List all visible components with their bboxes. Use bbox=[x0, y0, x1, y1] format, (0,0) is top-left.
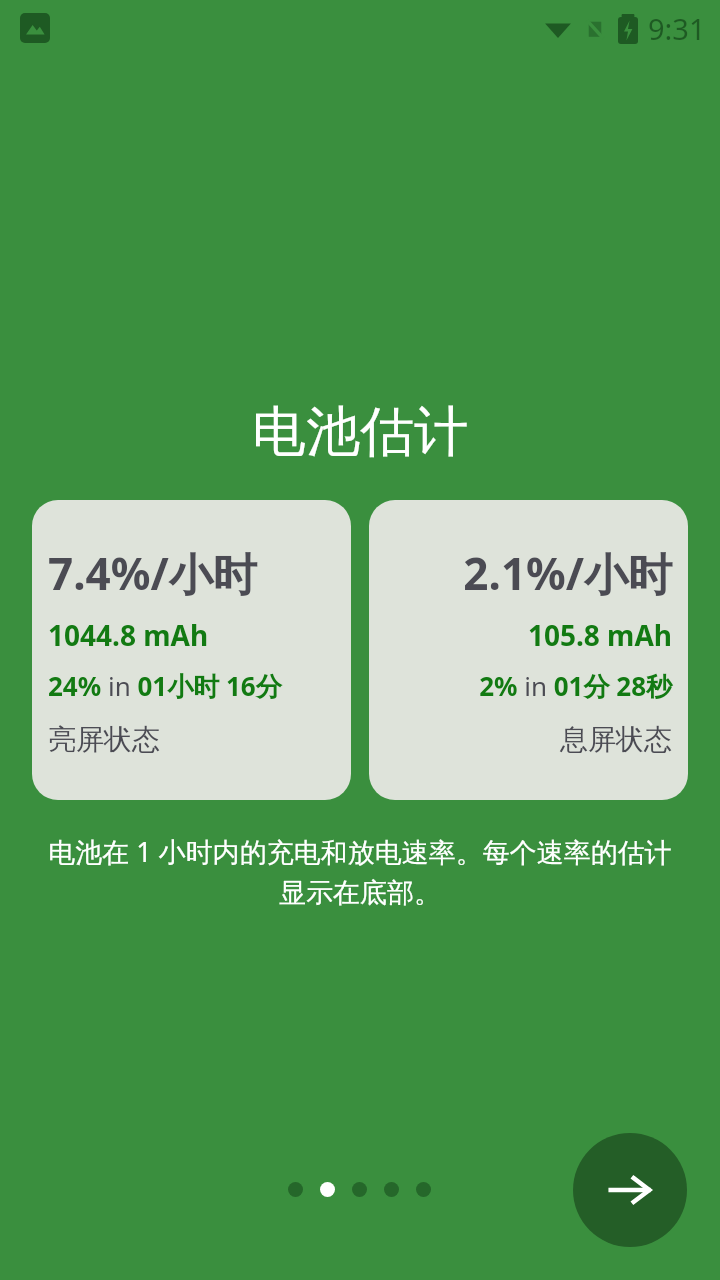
staticText: 105.8 mAh bbox=[527, 616, 672, 654]
staticText: 电池在 1 小时内的充电和放电速率。每个速率的估计显示在底部。 bbox=[36, 833, 684, 910]
staticText: 7.4%/小时 bbox=[48, 543, 257, 603]
staticText: 息屏状态 bbox=[560, 722, 672, 757]
staticText: 9:31 bbox=[648, 9, 706, 48]
staticText: 1044.8 mAh bbox=[48, 616, 209, 654]
button[interactable]: 2.1%/小时 bbox=[369, 500, 688, 800]
button[interactable]: 7.4%/小时 bbox=[32, 500, 351, 800]
staticText: 亮屏状态 bbox=[48, 722, 160, 757]
button[interactable]: Next bbox=[573, 1133, 687, 1247]
staticText: 电池估计 bbox=[252, 398, 468, 466]
staticText: 2% in 01分 28秒 bbox=[479, 668, 672, 704]
staticText: 24% in 01小时 16分 bbox=[48, 668, 282, 704]
staticText: 2.1%/小时 bbox=[463, 543, 672, 603]
